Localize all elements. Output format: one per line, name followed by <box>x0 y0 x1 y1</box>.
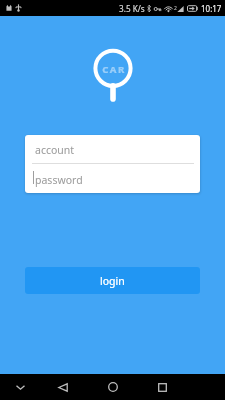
button[interactable]: Recents <box>150 376 174 398</box>
button[interactable]: Hide keyboard <box>8 376 32 398</box>
staticText: account <box>35 143 75 157</box>
staticText: CAR <box>102 63 126 76</box>
staticText: 10:17 <box>201 3 222 14</box>
staticText: 2 <box>174 5 177 12</box>
staticText: 3.5 K/s <box>119 3 145 14</box>
button[interactable]: Home <box>101 376 125 398</box>
staticText: login <box>100 274 125 288</box>
button[interactable]: account <box>25 135 200 163</box>
button[interactable]: Back <box>51 376 75 398</box>
button[interactable]: login <box>25 267 200 294</box>
staticText: password <box>35 173 83 187</box>
button[interactable]: password <box>25 164 200 193</box>
